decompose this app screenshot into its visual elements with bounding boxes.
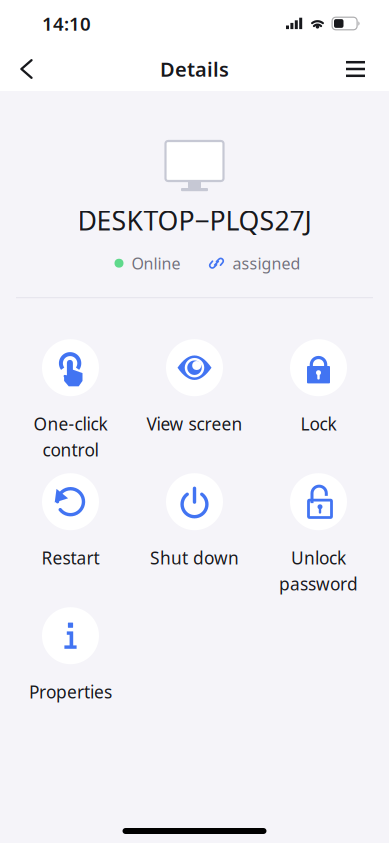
button[interactable]: Restart: [8, 473, 132, 607]
staticText: Unlock: [291, 546, 346, 569]
staticText: Restart: [41, 546, 99, 569]
staticText: 14:10: [42, 11, 91, 36]
button[interactable]: Shut down: [132, 473, 256, 607]
staticText: Details: [160, 56, 229, 82]
staticText: control: [42, 438, 98, 461]
staticText: assigned: [232, 253, 300, 274]
button[interactable]: Back: [0, 47, 47, 91]
button[interactable]: View screen: [132, 339, 256, 473]
staticText: Properties: [29, 680, 112, 703]
staticText: Lock: [300, 412, 336, 435]
staticText: password: [279, 572, 358, 595]
button[interactable]: One-click: [8, 339, 132, 473]
button[interactable]: Unlock: [256, 473, 380, 607]
button[interactable]: Lock: [256, 339, 380, 473]
staticText: Shut down: [150, 546, 239, 569]
staticText: Online: [131, 253, 180, 274]
staticText: One-click: [33, 412, 107, 435]
staticText: DESKTOP−PLQS27J: [77, 202, 311, 238]
button[interactable]: Properties: [8, 607, 132, 741]
button[interactable]: Menu: [332, 47, 389, 91]
staticText: View screen: [146, 412, 242, 435]
